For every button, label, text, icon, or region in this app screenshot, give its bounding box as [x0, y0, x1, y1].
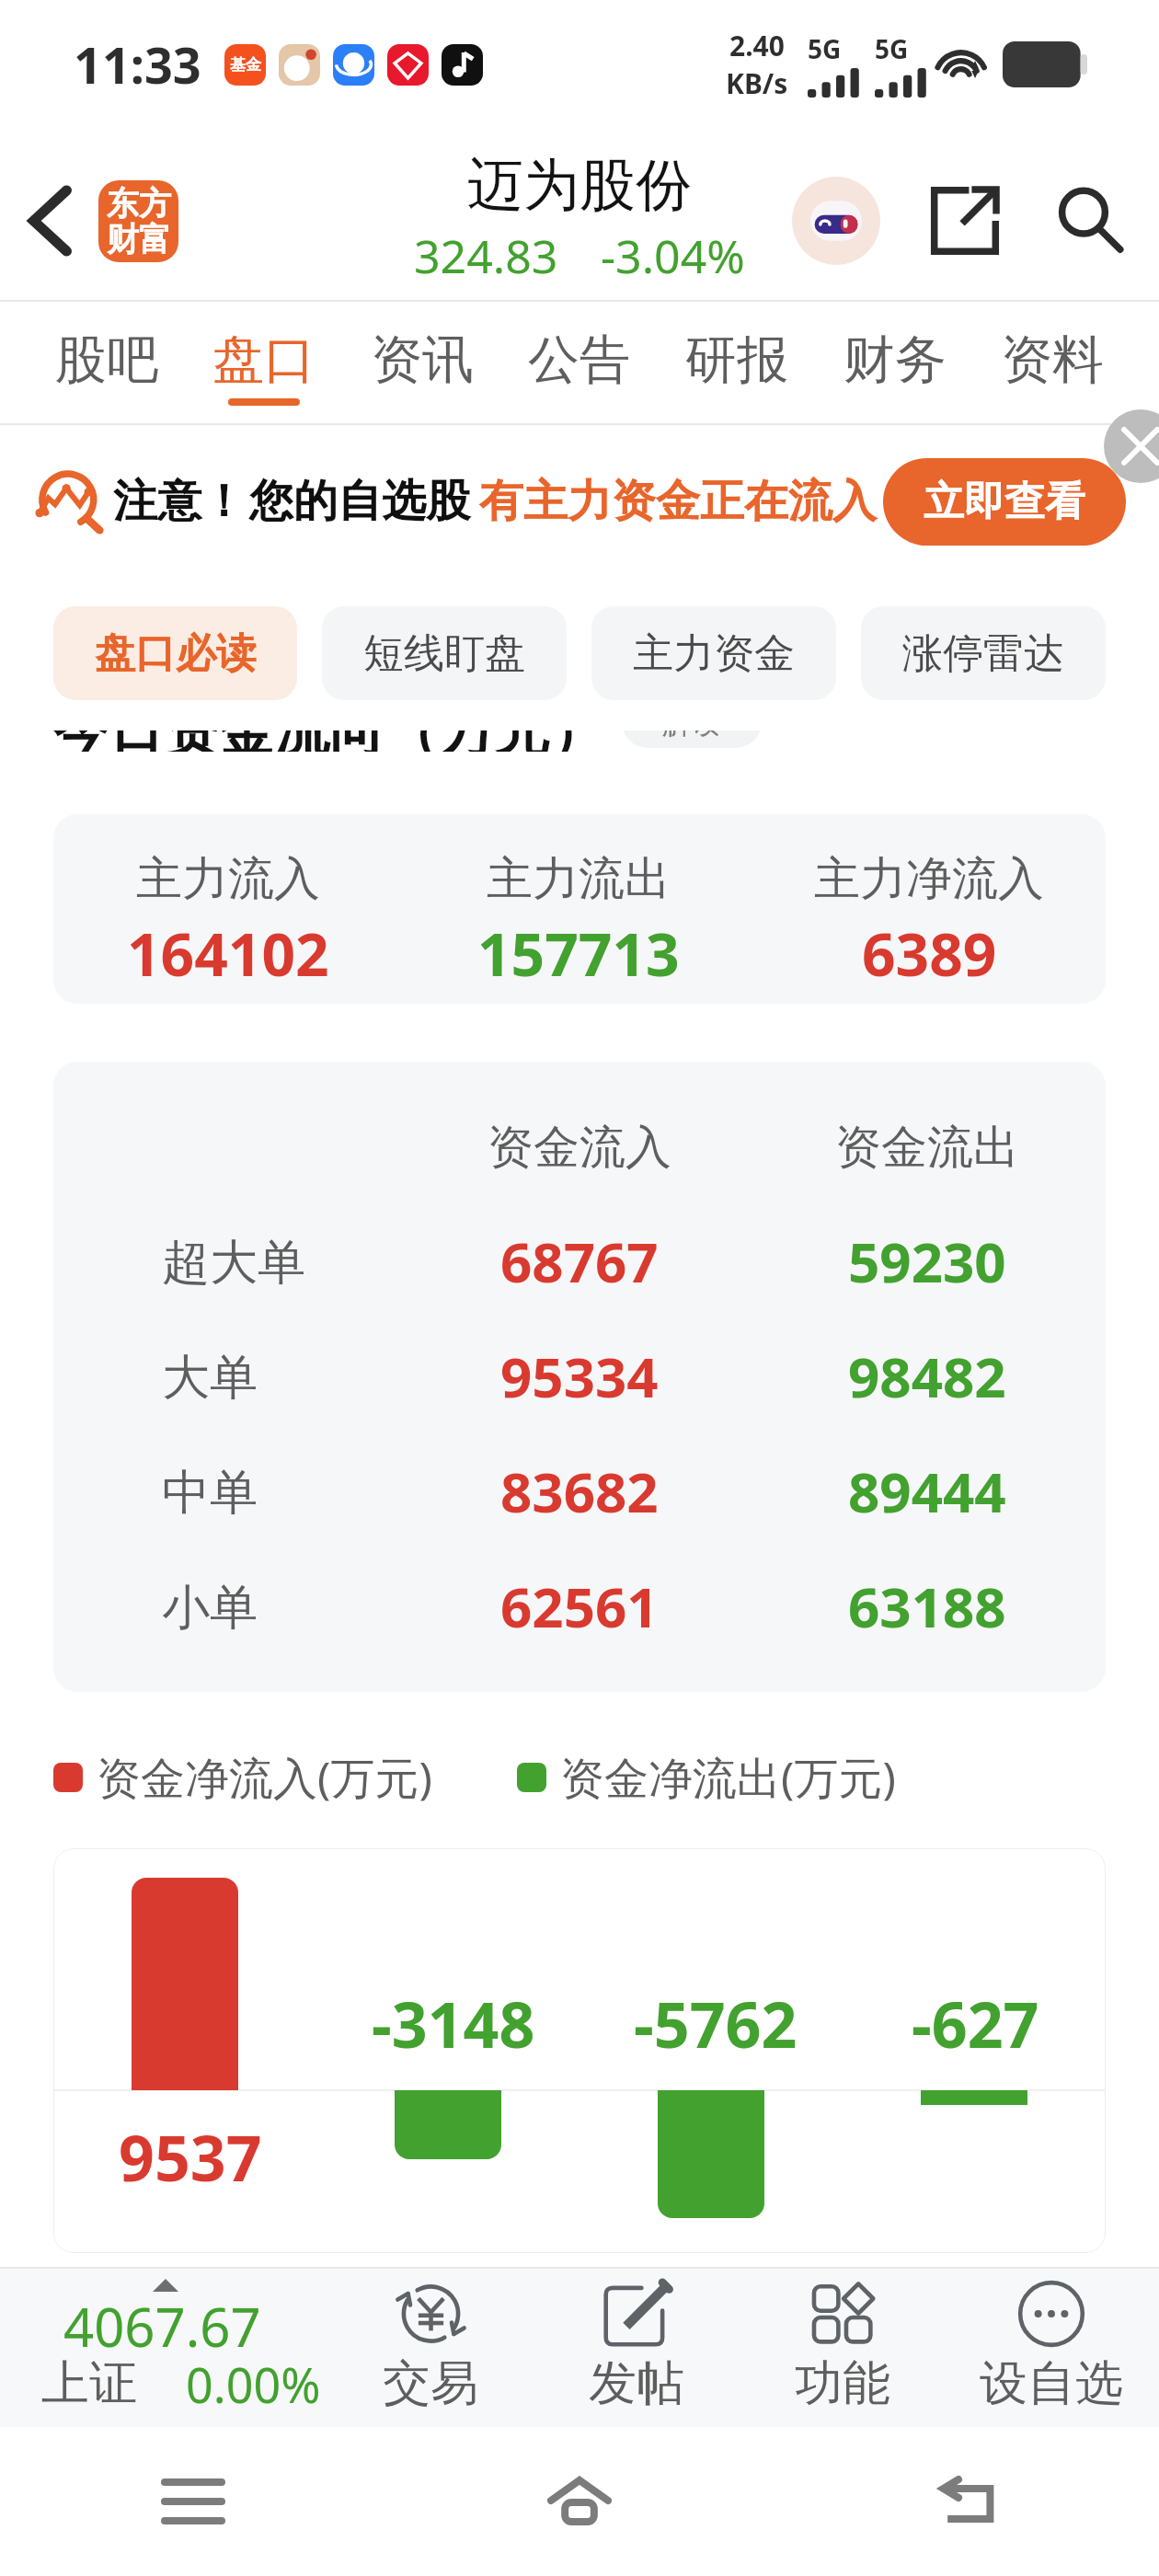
staticText: KB/s: [726, 64, 788, 102]
staticText: 59230: [848, 1224, 1006, 1299]
button[interactable]: 东方 财富: [98, 180, 178, 262]
staticText: 89444: [848, 1454, 1006, 1529]
staticText: 主力流入: [136, 850, 320, 908]
staticText: 今日资金流向（万元）: [53, 696, 605, 752]
staticText: 发帖: [589, 2353, 684, 2414]
staticText: 资讯: [371, 328, 474, 393]
staticText: 东方 财富: [107, 183, 171, 260]
staticText: -5762: [634, 1981, 798, 2066]
staticText: 有主力资金正在流入: [479, 474, 877, 529]
button[interactable]: Back: [14, 184, 87, 258]
staticText: 迈为股份: [467, 150, 692, 221]
button[interactable]: 交易: [329, 2269, 532, 2427]
staticText: 涨停雷达: [902, 628, 1064, 679]
staticText: 交易: [383, 2353, 478, 2414]
button[interactable]: 公告: [528, 328, 631, 406]
staticText: 盘口必读: [95, 628, 257, 679]
staticText: -3148: [372, 1981, 535, 2066]
staticText: 0.00%: [186, 2352, 321, 2417]
staticText: 157713: [477, 914, 680, 994]
staticText: -627: [912, 1981, 1039, 2066]
staticText: 324.83: [414, 224, 558, 287]
staticText: 中单: [162, 1463, 258, 1524]
button[interactable]: 短线盯盘: [322, 606, 567, 700]
button[interactable]: 涨停雷达: [861, 606, 1106, 700]
staticText: 主力流出: [487, 850, 671, 908]
staticText: 资金流入: [488, 1119, 671, 1177]
staticText: 股吧: [55, 328, 158, 393]
staticText: 超大单: [162, 1233, 305, 1294]
staticText: 上证: [41, 2353, 137, 2414]
staticText: 设自选: [980, 2353, 1123, 2414]
staticText: 小单: [162, 1578, 258, 1639]
staticText: 164102: [127, 914, 329, 994]
staticText: 资金净流出(万元): [560, 1747, 896, 1808]
button[interactable]: 立即查看: [883, 458, 1126, 546]
button[interactable]: Share: [929, 185, 1001, 257]
button[interactable]: 资料: [1001, 328, 1104, 406]
button[interactable]: 盘口: [212, 328, 316, 406]
staticText: 公告: [528, 328, 631, 393]
staticText: 资金净流入(万元): [97, 1747, 432, 1808]
staticText: 立即查看: [924, 477, 1085, 527]
staticText: 主力净流入: [814, 850, 1044, 908]
button[interactable]: Home: [529, 2458, 630, 2545]
staticText: -3.04%: [601, 224, 745, 287]
staticText: 研报: [685, 328, 788, 393]
staticText: 4067.67: [63, 2290, 261, 2363]
staticText: 功能: [795, 2353, 890, 2414]
button[interactable]: AI assistant: [792, 177, 880, 265]
staticText: 6389: [862, 914, 997, 994]
button[interactable]: Close banner: [1104, 409, 1159, 483]
staticText: 资金流出: [835, 1119, 1019, 1177]
staticText: 财务: [843, 328, 947, 393]
staticText: 68767: [500, 1224, 659, 1299]
staticText: 您的自选股: [249, 474, 470, 529]
staticText: 5G: [875, 31, 909, 66]
button[interactable]: 财务: [843, 328, 947, 406]
button[interactable]: Recents: [144, 2462, 242, 2541]
staticText: 盘口: [212, 328, 316, 393]
button[interactable]: 注意！: [0, 423, 1159, 552]
staticText: 资料: [1001, 328, 1104, 393]
staticText: 83682: [500, 1454, 659, 1529]
staticText: 短线盯盘: [363, 628, 525, 679]
staticText: 95334: [500, 1339, 659, 1414]
button[interactable]: 功能: [741, 2269, 944, 2427]
button[interactable]: Search: [1054, 185, 1126, 257]
staticText: 注意！: [113, 474, 246, 529]
button[interactable]: Back: [915, 2458, 1016, 2545]
button[interactable]: 主力资金: [591, 606, 836, 700]
button[interactable]: 资讯: [371, 328, 474, 406]
button[interactable]: [0, 2269, 331, 2427]
staticText: 98482: [848, 1339, 1006, 1414]
staticText: 9537: [119, 2114, 262, 2200]
button[interactable]: 设自选: [950, 2269, 1153, 2427]
staticText: 11:33: [74, 30, 201, 98]
button[interactable]: 盘口必读: [53, 606, 297, 700]
button[interactable]: 研报: [685, 328, 788, 406]
staticText: 大单: [162, 1348, 258, 1409]
staticText: 62561: [500, 1569, 659, 1644]
button[interactable]: 股吧: [55, 328, 158, 406]
staticText: 63188: [848, 1569, 1006, 1644]
staticText: 2.40: [729, 27, 785, 64]
button[interactable]: 发帖: [535, 2269, 738, 2427]
staticText: 解读: [662, 704, 721, 741]
staticText: 5G: [808, 31, 842, 66]
staticText: 主力资金: [633, 628, 795, 679]
staticText: 基金: [230, 55, 261, 75]
